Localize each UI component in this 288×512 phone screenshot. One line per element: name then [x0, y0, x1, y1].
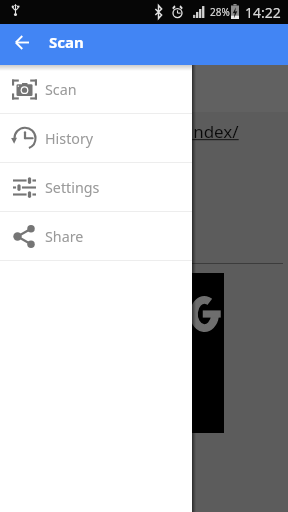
staticText: Share — [45, 227, 84, 246]
staticText: History — [45, 129, 94, 148]
button[interactable]: Back — [4, 24, 40, 60]
button[interactable]: Settings — [0, 163, 192, 211]
staticText: 14:22 — [245, 3, 281, 22]
button[interactable]: Scan — [0, 65, 192, 113]
staticText: http://example.com/index/ — [25, 120, 239, 143]
staticText: Scan — [49, 32, 84, 52]
button[interactable]: History — [0, 114, 192, 162]
staticText: 28% — [210, 5, 230, 19]
button[interactable]: Share — [0, 212, 192, 260]
staticText: Scan — [45, 80, 77, 99]
staticText: Settings — [45, 178, 100, 197]
